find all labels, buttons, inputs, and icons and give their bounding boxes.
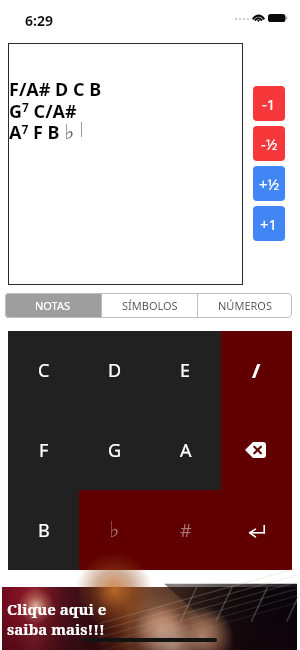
- staticText: A: [180, 438, 192, 463]
- staticText: ♭: [109, 517, 120, 543]
- staticText: F: [39, 438, 49, 463]
- staticText: NÚMEROS: [218, 298, 272, 313]
- button[interactable]: B: [8, 490, 79, 570]
- staticText: +½: [259, 174, 280, 194]
- staticText: C: [38, 358, 50, 383]
- button[interactable]: G: [79, 410, 150, 490]
- staticText: G: [108, 438, 122, 463]
- staticText: #: [180, 518, 192, 543]
- staticText: /: [252, 357, 261, 384]
- button[interactable]: NÚMEROS: [198, 293, 292, 318]
- staticText: 6:29: [25, 11, 53, 30]
- staticText: G7 C/A#: [9, 99, 77, 124]
- button[interactable]: C: [8, 331, 79, 410]
- button[interactable]: NOTAS: [5, 293, 101, 318]
- staticText: Clique aqui e: [7, 599, 107, 619]
- button[interactable]: +½: [253, 166, 285, 201]
- button[interactable]: +1: [253, 206, 285, 241]
- button[interactable]: E: [150, 331, 221, 410]
- staticText: -½: [261, 134, 278, 154]
- staticText: F/A# D C B: [9, 77, 102, 102]
- staticText: +1: [260, 214, 278, 234]
- staticText: A7 F B ♭: [9, 120, 75, 145]
- button[interactable]: F: [8, 410, 79, 490]
- button[interactable]: A: [150, 410, 221, 490]
- staticText: B: [38, 518, 50, 543]
- button[interactable]: -½: [253, 126, 285, 161]
- button[interactable]: ♭: [79, 490, 150, 570]
- button[interactable]: Enter: [221, 490, 292, 570]
- staticText: saiba mais!!!: [7, 619, 105, 639]
- button[interactable]: Clique aqui e: [2, 587, 297, 650]
- staticText: NOTAS: [35, 298, 71, 313]
- staticText: -1: [262, 94, 276, 114]
- button[interactable]: D: [79, 331, 150, 410]
- staticText: D: [108, 358, 122, 383]
- button[interactable]: SÍMBOLOS: [102, 293, 197, 318]
- button[interactable]: #: [150, 490, 221, 570]
- button[interactable]: Backspace: [221, 410, 292, 490]
- staticText: SÍMBOLOS: [122, 298, 178, 313]
- button[interactable]: -1: [253, 86, 285, 121]
- button[interactable]: /: [221, 331, 292, 410]
- staticText: E: [180, 358, 191, 383]
